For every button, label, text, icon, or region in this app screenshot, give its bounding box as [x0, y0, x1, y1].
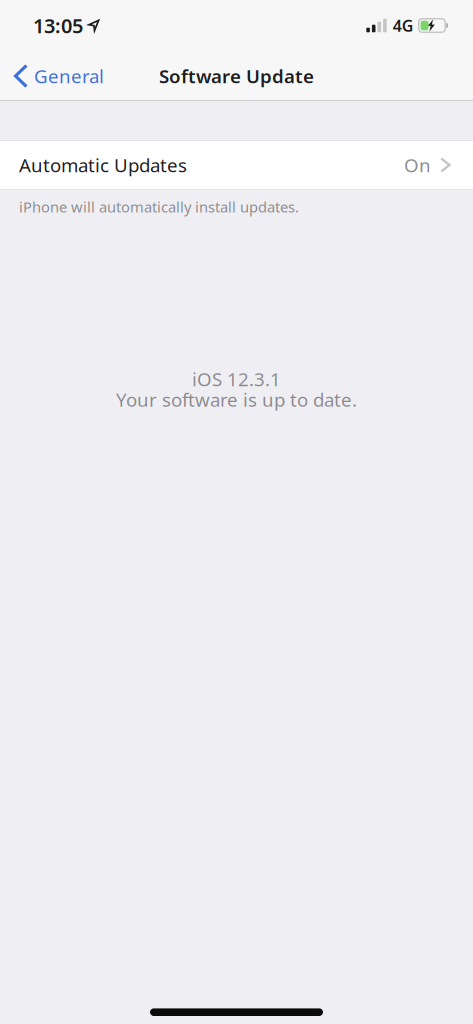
button[interactable]: Back to General — [0, 51, 114, 101]
staticText: 13:05 — [33, 12, 83, 39]
staticText: 4G — [393, 15, 414, 36]
button[interactable]: Automatic Updates — [0, 140, 473, 190]
staticText: Software Update — [159, 64, 314, 88]
staticText: General — [34, 64, 104, 88]
staticText: On — [404, 153, 431, 177]
staticText: iPhone will automatically install update… — [19, 197, 299, 216]
staticText: Your software is up to date. — [116, 387, 357, 412]
staticText: iOS 12.3.1 — [192, 367, 281, 391]
staticText: Automatic Updates — [19, 153, 187, 177]
